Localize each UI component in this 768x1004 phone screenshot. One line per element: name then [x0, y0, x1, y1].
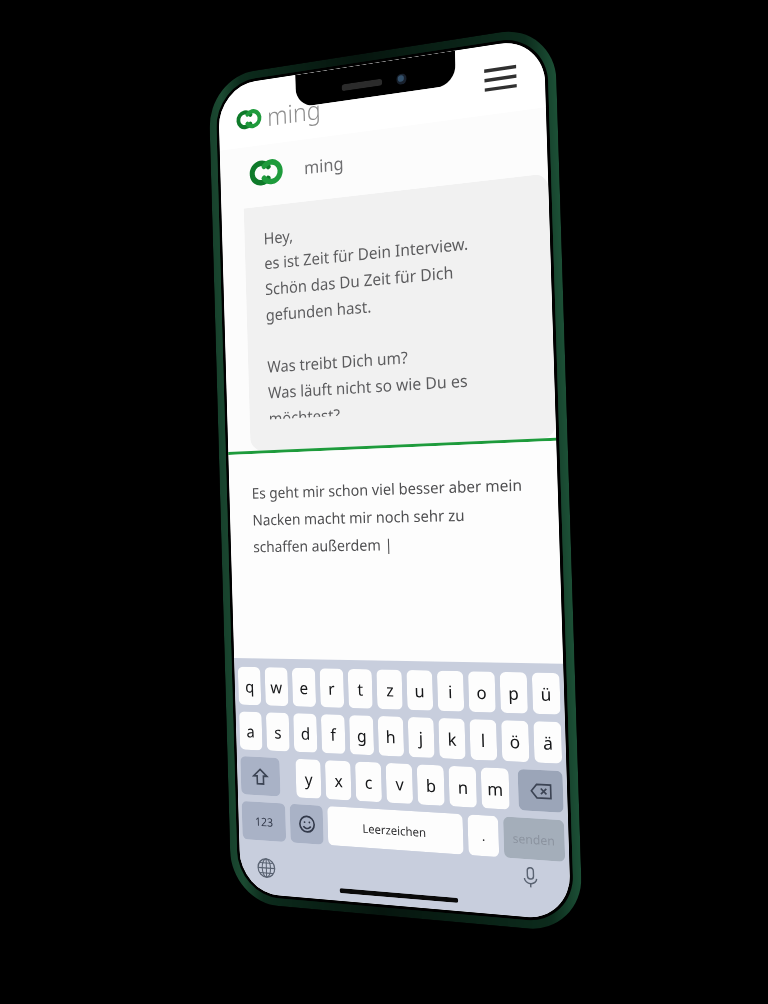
staticText: Es geht mir schon viel besser aber mein … [251, 473, 525, 557]
button[interactable]: e [292, 668, 316, 707]
button[interactable]: u [406, 670, 433, 711]
staticText: d [300, 722, 311, 745]
staticText: ö [509, 729, 521, 754]
button[interactable]: 123 [241, 801, 286, 842]
staticText: . [481, 826, 486, 845]
button[interactable]: Es geht mir schon viel besser aber mein … [228, 441, 563, 664]
staticText: c [364, 771, 373, 794]
button[interactable]: t [348, 669, 373, 709]
staticText: ü [540, 682, 552, 706]
button[interactable]: k [438, 718, 466, 759]
button[interactable]: senden [503, 816, 565, 862]
button[interactable]: Hey, es ist Zeit für Dein Interview. Sch… [244, 173, 556, 451]
staticText: ä [543, 731, 554, 755]
staticText: senden [512, 829, 556, 849]
button[interactable]: p [500, 672, 528, 714]
button[interactable]: x [325, 760, 351, 801]
button[interactable]: ä [533, 721, 562, 764]
button[interactable]: z [376, 669, 403, 710]
staticText: r [328, 677, 336, 700]
button[interactable]: Leerzeichen [327, 806, 464, 855]
staticText: s [274, 721, 282, 744]
staticText: i [448, 680, 453, 703]
staticText: w [270, 676, 283, 698]
staticText: f [330, 723, 336, 746]
button[interactable]: Backspace [518, 769, 564, 813]
button[interactable]: Voice input [514, 860, 546, 894]
button[interactable]: c [355, 761, 382, 802]
staticText: ming [267, 91, 322, 133]
button[interactable]: . [467, 814, 499, 857]
staticText: o [476, 680, 488, 704]
button[interactable]: d [293, 713, 317, 753]
staticText: e [299, 676, 309, 699]
staticText: t [357, 678, 364, 701]
staticText: y [304, 768, 313, 791]
staticText: g [357, 724, 367, 747]
staticText: ming [304, 151, 344, 180]
staticText: l [480, 728, 486, 752]
staticText: n [457, 775, 469, 799]
staticText: p [508, 681, 520, 705]
staticText: b [426, 774, 437, 797]
button[interactable]: v [386, 763, 413, 804]
staticText: m [487, 777, 503, 801]
button[interactable]: Emoji [289, 804, 324, 845]
button[interactable]: l [469, 719, 497, 761]
button[interactable]: w [265, 667, 288, 706]
button[interactable]: f [321, 714, 345, 754]
button[interactable]: q [238, 667, 261, 705]
button[interactable]: ming [237, 91, 322, 137]
button[interactable]: n [448, 766, 477, 808]
staticText: z [386, 678, 394, 702]
button[interactable]: o [468, 671, 496, 713]
button[interactable]: r [319, 668, 344, 708]
button[interactable]: ü [532, 672, 561, 715]
staticText: 123 [255, 813, 274, 830]
button[interactable]: ö [501, 720, 529, 762]
staticText: j [418, 726, 424, 750]
staticText: x [334, 769, 343, 792]
button[interactable]: g [349, 715, 374, 755]
button[interactable]: b [417, 764, 445, 806]
staticText: a [246, 720, 255, 742]
staticText: Hey, es ist Zeit für Dein Interview. Sch… [263, 205, 474, 420]
button[interactable]: a [239, 711, 263, 750]
staticText: k [447, 727, 458, 751]
button[interactable]: i [437, 671, 464, 712]
button[interactable]: m [481, 767, 510, 810]
staticText: Leerzeichen [362, 820, 427, 840]
button[interactable]: Menu [478, 53, 523, 104]
staticText: u [414, 679, 425, 702]
button[interactable]: Shift [240, 756, 280, 796]
button[interactable]: j [408, 717, 435, 758]
button[interactable]: y [295, 759, 321, 799]
staticText: v [395, 772, 404, 796]
staticText: h [385, 725, 396, 748]
staticText: q [245, 675, 255, 697]
button[interactable]: s [266, 712, 290, 752]
button[interactable]: Change keyboard language [252, 851, 280, 884]
button[interactable]: h [378, 716, 404, 757]
